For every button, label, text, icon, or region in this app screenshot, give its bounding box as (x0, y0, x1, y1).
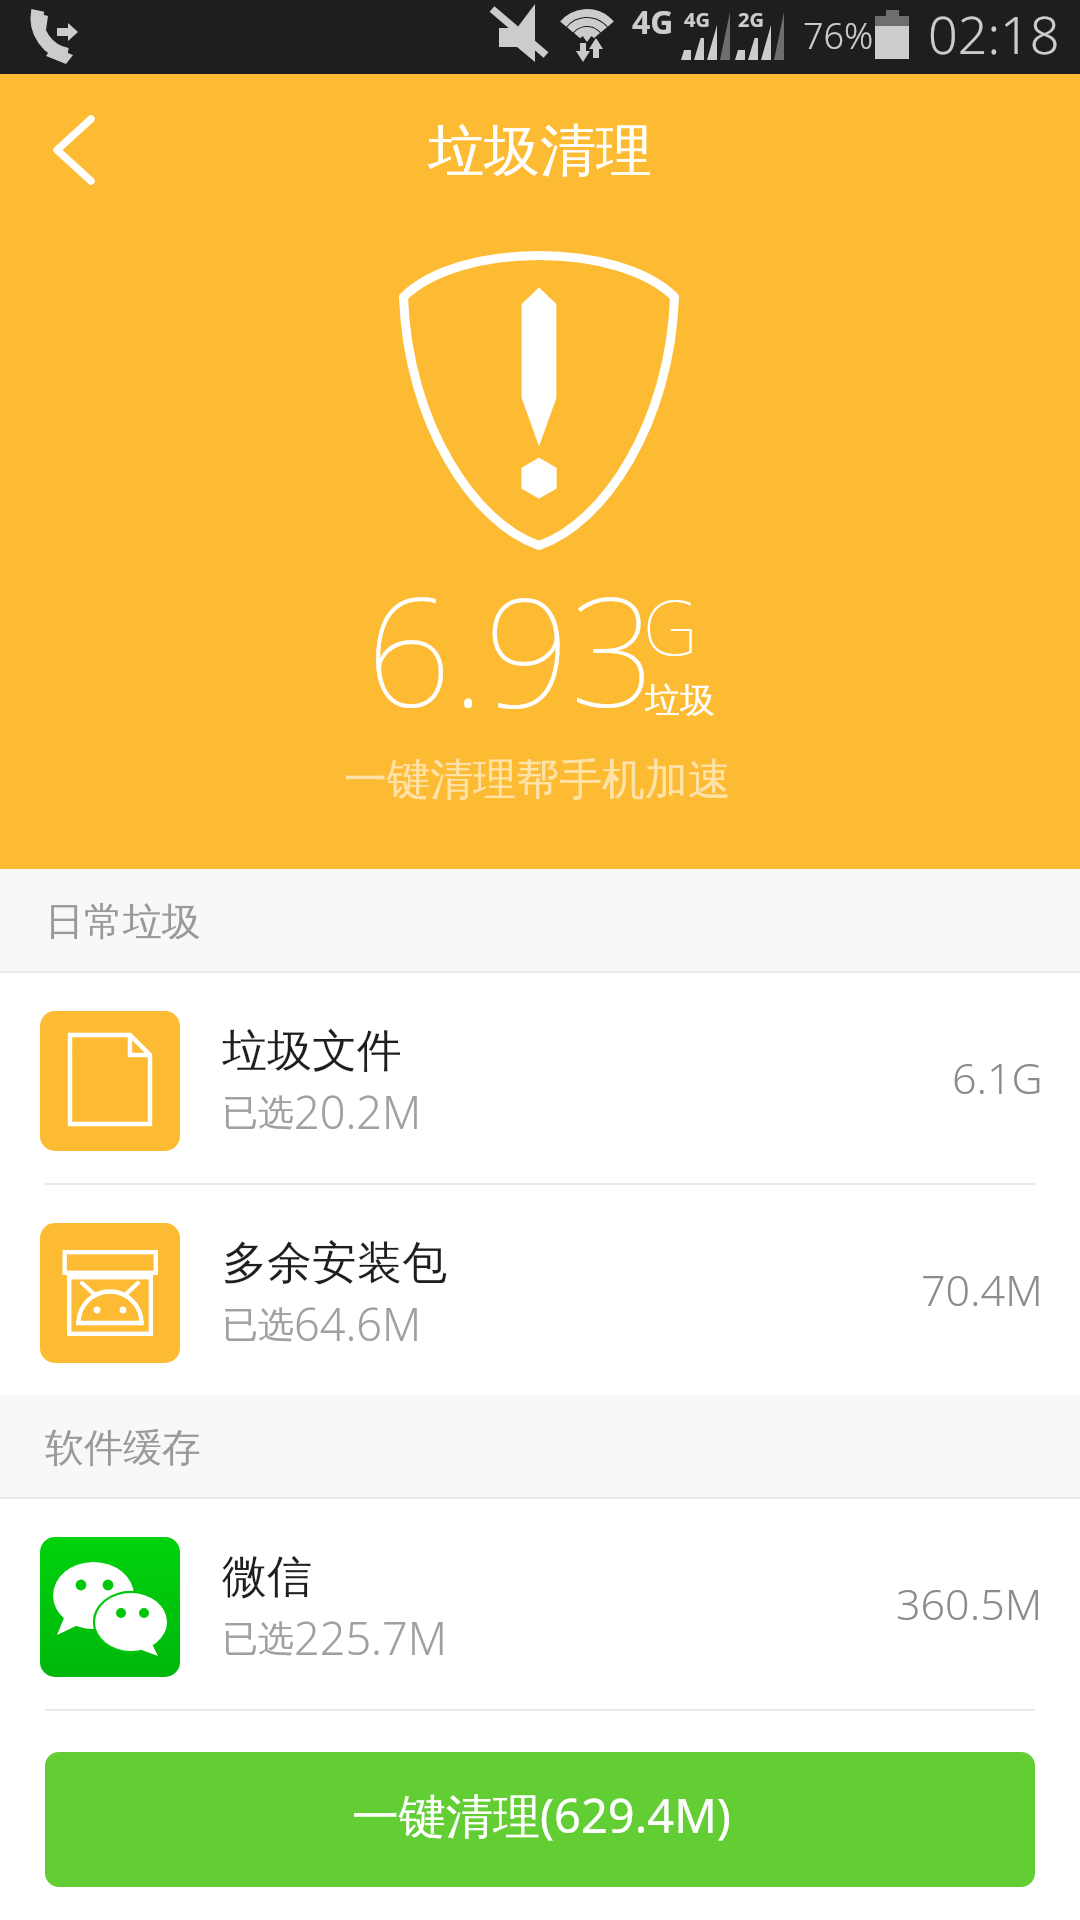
staticText: G (643, 574, 698, 678)
staticText: 4G (632, 0, 674, 44)
staticText: 64.6M (294, 1293, 422, 1354)
staticText: 已选 (222, 1302, 294, 1347)
staticText: 垃圾清理 (428, 116, 652, 187)
staticText: 225.7M (294, 1607, 448, 1668)
staticText: 4G (684, 6, 710, 33)
button[interactable]: 垃圾文件 (0, 973, 1080, 1183)
staticText: 一键清理帮手机加速 (344, 753, 731, 807)
staticText: 已选 (222, 1616, 294, 1661)
staticText: 软件缓存 (45, 1423, 201, 1472)
staticText: 6.1G (952, 1048, 1043, 1107)
staticText: 360.5M (896, 1574, 1043, 1633)
button[interactable]: Back (0, 74, 148, 226)
staticText: 已选 (222, 1090, 294, 1135)
staticText: 微信 (222, 1549, 312, 1606)
staticText: 70.4M (921, 1260, 1043, 1319)
button[interactable]: 微信 (0, 1499, 1080, 1709)
staticText: 6.93 (366, 547, 656, 751)
staticText: 日常垃圾 (45, 897, 201, 946)
staticText: 76% (803, 11, 874, 60)
staticText: 一键清理(629.4M) (352, 1783, 731, 1847)
staticText: 垃圾文件 (222, 1023, 402, 1080)
staticText: 垃圾 (645, 678, 715, 722)
button[interactable]: 一键清理(629.4M) (45, 1752, 1035, 1887)
staticText: 02:18 (928, 0, 1060, 69)
staticText: 多余安装包 (222, 1235, 447, 1292)
staticText: 2G (738, 6, 764, 33)
staticText: 20.2M (294, 1081, 422, 1142)
button[interactable]: 多余安装包 (0, 1185, 1080, 1395)
